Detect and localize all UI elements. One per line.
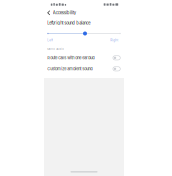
staticText: Mono audio — [47, 47, 64, 51]
staticText: Customize ambient sound — [47, 66, 92, 71]
staticText: Route calls with one earbud — [47, 55, 94, 60]
button[interactable]: Customize ambient sound — [47, 63, 121, 74]
staticText: Left/right sound balance — [47, 20, 90, 25]
staticText: Right — [110, 38, 118, 42]
button[interactable]: Route calls with one earbud — [47, 52, 121, 63]
staticText: Left — [47, 38, 53, 42]
staticText: Accessibility — [53, 10, 76, 15]
button[interactable]: Accessibility — [47, 10, 121, 16]
